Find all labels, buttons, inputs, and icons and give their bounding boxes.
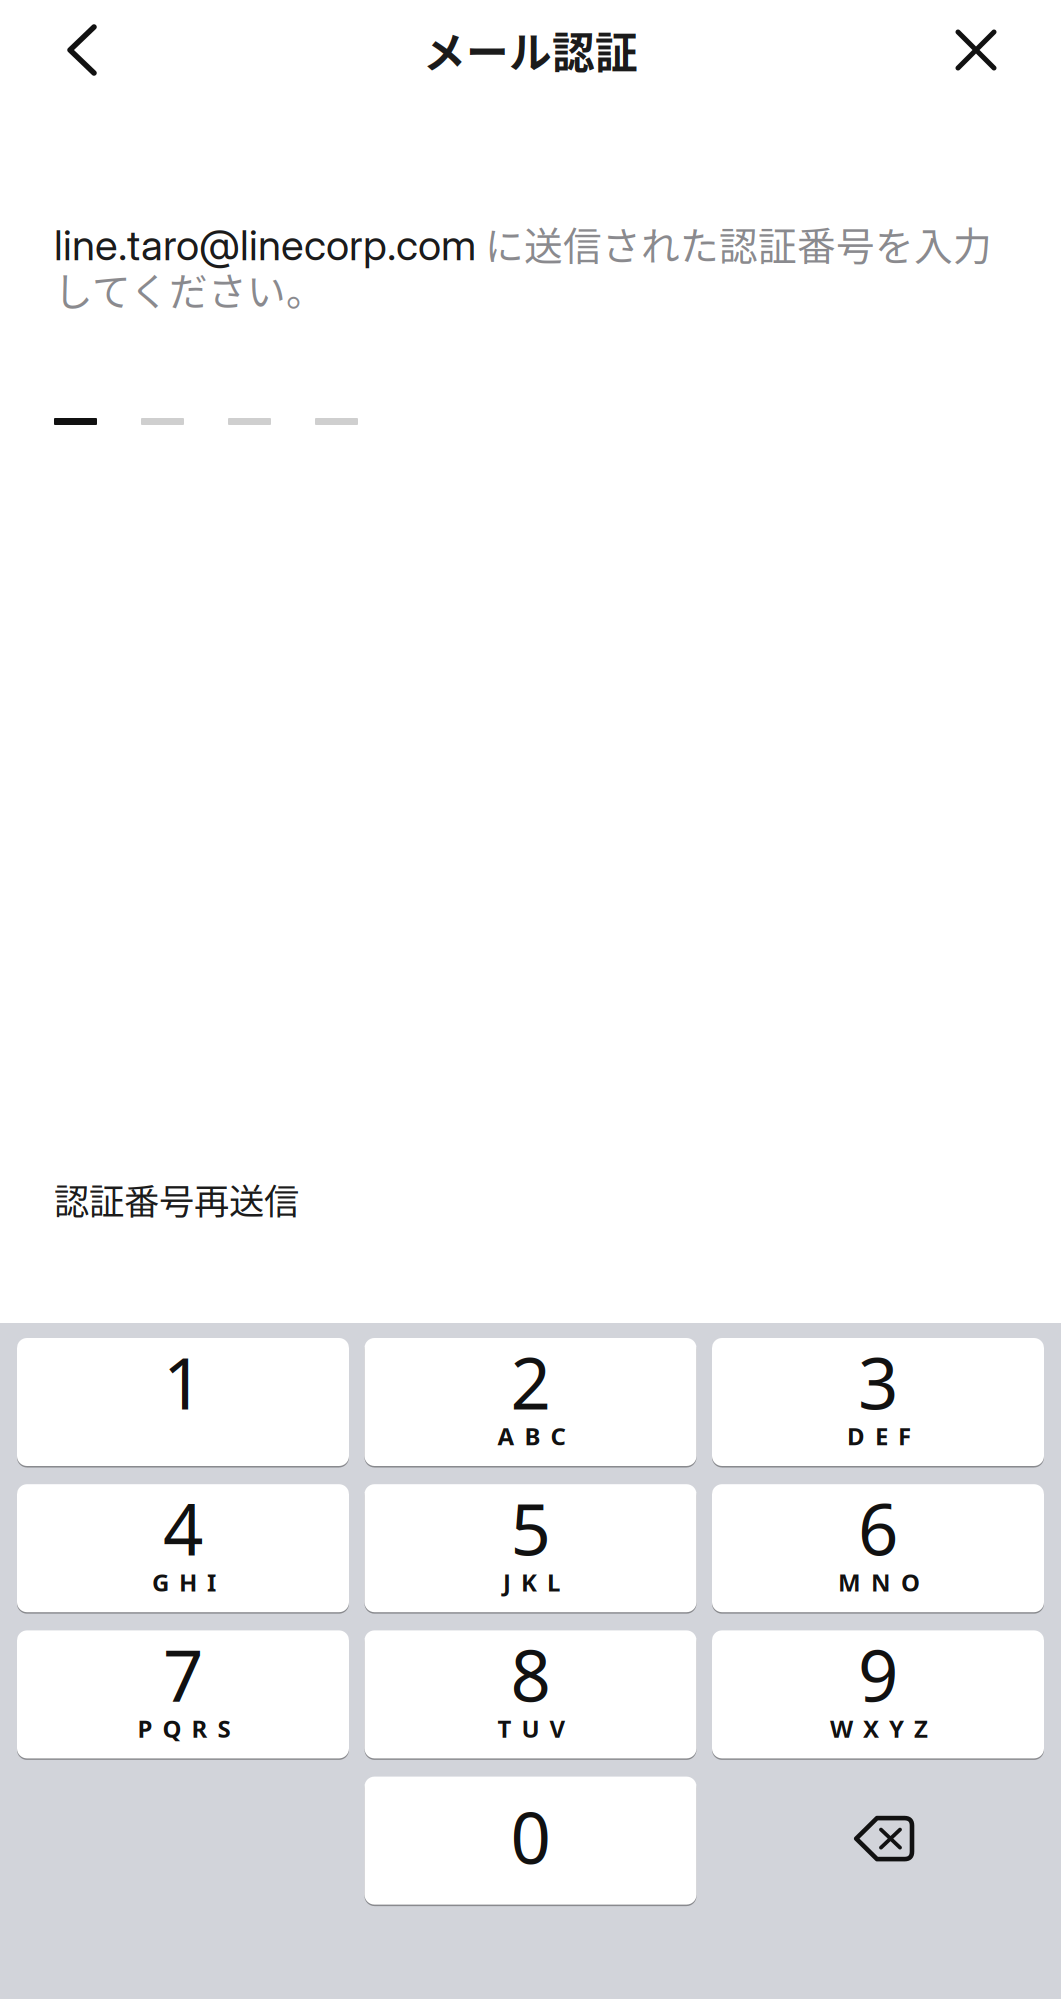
button[interactable]: 9 <box>712 1630 1044 1758</box>
staticText: J K L <box>503 1566 560 1598</box>
staticText: M N O <box>838 1566 920 1598</box>
staticText: A B C <box>497 1420 565 1452</box>
button[interactable]: 1 <box>17 1338 349 1466</box>
button[interactable]: Close <box>934 4 1018 96</box>
staticText: 4 <box>163 1481 203 1575</box>
button[interactable]: Delete <box>712 1777 1044 1905</box>
staticText: 1 <box>163 1335 203 1429</box>
staticText: P Q R S <box>137 1712 230 1744</box>
staticText: 0 <box>510 1790 550 1883</box>
staticText: 7 <box>163 1627 203 1721</box>
staticText: G H I <box>152 1566 216 1598</box>
button[interactable]: 7 <box>17 1630 349 1758</box>
button[interactable]: 8 <box>364 1630 696 1758</box>
button[interactable]: Back <box>40 4 124 96</box>
button[interactable]: 認証番号再送信 <box>54 1170 299 1228</box>
staticText: 2 <box>510 1335 550 1429</box>
staticText: D E F <box>847 1420 911 1452</box>
staticText: 認証番号再送信 <box>54 1173 299 1225</box>
staticText: メール認証 <box>423 19 638 81</box>
staticText: 5 <box>510 1481 550 1575</box>
staticText: line.taro@linecorp.com に送信された認証番号を入力してくだ… <box>54 216 992 316</box>
button[interactable]: 5 <box>364 1484 696 1612</box>
button[interactable]: 3 <box>712 1338 1044 1466</box>
staticText: 9 <box>858 1627 898 1721</box>
staticText: T U V <box>497 1712 565 1744</box>
staticText: 6 <box>858 1481 898 1575</box>
button[interactable]: 6 <box>712 1484 1044 1612</box>
button[interactable]: 2 <box>364 1338 696 1466</box>
button[interactable]: 4 <box>17 1484 349 1612</box>
staticText: 8 <box>510 1627 550 1721</box>
button[interactable]: 0 <box>364 1777 696 1905</box>
staticText: 3 <box>858 1335 898 1429</box>
staticText: W X Y Z <box>830 1712 928 1744</box>
